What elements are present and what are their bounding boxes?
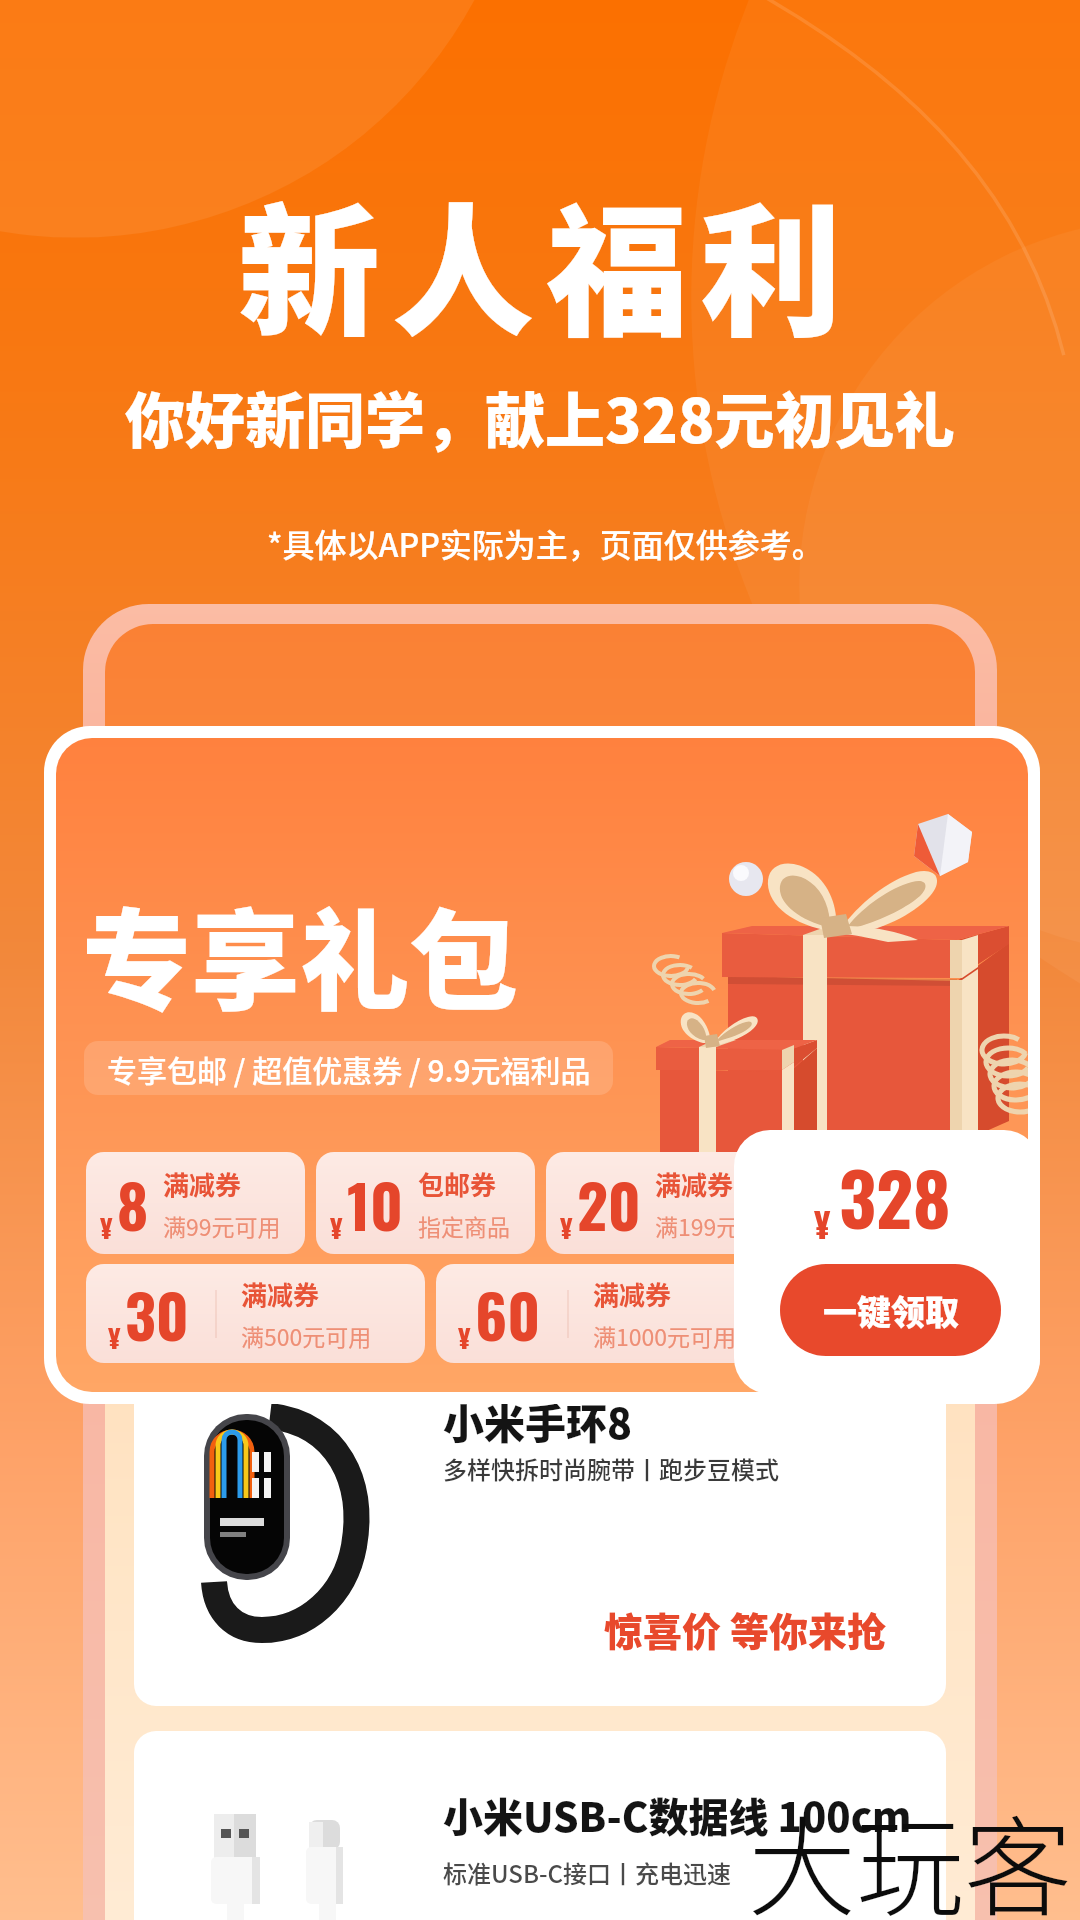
button[interactable]: ¥ bbox=[316, 1152, 535, 1254]
staticText: 30 bbox=[125, 1269, 189, 1358]
staticText: 标准USB-C接口丨充电迅速 bbox=[443, 1855, 731, 1890]
staticText: 专享礼包 bbox=[82, 875, 518, 1033]
staticText: 8 bbox=[117, 1159, 149, 1248]
staticText: ¥ bbox=[108, 1318, 121, 1357]
staticText: 满99元可用 bbox=[163, 1209, 281, 1242]
staticText: *具体以APP实际为主，页面仅供参考。 bbox=[267, 520, 824, 566]
button[interactable]: Mi Band 8 bbox=[134, 1333, 946, 1706]
staticText: 专享包邮 / 超值优惠券 / 9.9元福利品 bbox=[107, 1047, 591, 1090]
staticText: ¥ bbox=[560, 1208, 573, 1247]
button[interactable]: ¥ bbox=[546, 1152, 765, 1254]
button[interactable]: USB-C cable bbox=[134, 1731, 946, 1920]
button[interactable]: ¥ bbox=[86, 1264, 425, 1363]
staticText: 多样快拆时尚腕带丨跑步豆模式 bbox=[443, 1451, 779, 1486]
staticText: 满199元可用 bbox=[655, 1209, 765, 1242]
staticText: ¥ bbox=[330, 1208, 343, 1247]
staticText: 328 bbox=[839, 1143, 951, 1250]
staticText: 20 bbox=[577, 1159, 641, 1248]
staticText: 满减券 bbox=[241, 1275, 320, 1313]
other: Mi Band 8 bbox=[190, 1400, 420, 1660]
staticText: 新人福利 bbox=[238, 159, 854, 365]
staticText: 惊喜价 等你来抢 bbox=[604, 1601, 886, 1657]
staticText: ¥ bbox=[100, 1208, 113, 1247]
staticText: 满减券 bbox=[655, 1165, 734, 1203]
staticText: 60 bbox=[475, 1269, 541, 1358]
staticText: 满减券 bbox=[163, 1165, 242, 1203]
staticText: 包邮券 bbox=[418, 1165, 497, 1203]
other: USB-C cable bbox=[192, 1779, 392, 1920]
button[interactable]: 一键领取 bbox=[780, 1264, 1001, 1356]
staticText: 大玩客 bbox=[748, 1782, 1073, 1920]
staticText: ¥ bbox=[814, 1198, 831, 1248]
staticText: 小米USB-C数据线 100cm bbox=[443, 1786, 912, 1844]
button[interactable]: ¥ bbox=[86, 1152, 305, 1254]
staticText: 满500元可用 bbox=[241, 1319, 372, 1352]
staticText: 指定商品 bbox=[418, 1209, 510, 1242]
button[interactable]: ¥ bbox=[436, 1264, 775, 1363]
staticText: 满减券 bbox=[593, 1275, 672, 1313]
staticText: ¥ bbox=[458, 1318, 471, 1357]
staticText: 你好新同学，献上328元初见礼 bbox=[125, 373, 955, 460]
staticText: 小米手环8 bbox=[443, 1391, 632, 1450]
staticText: 一键领取 bbox=[823, 1286, 959, 1335]
staticText: 满1000元可用 bbox=[593, 1319, 737, 1352]
staticText: 10 bbox=[347, 1159, 404, 1248]
